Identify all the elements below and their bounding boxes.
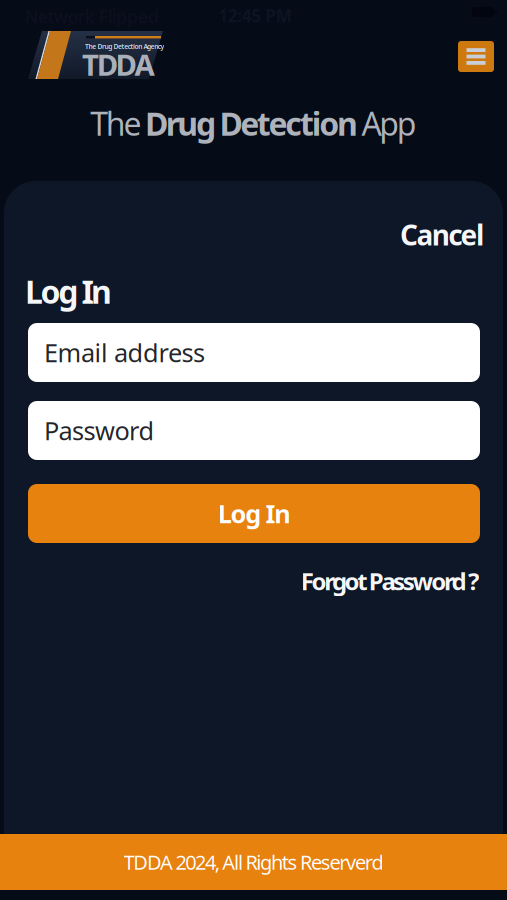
staticText: Cancel [400, 216, 484, 253]
button[interactable]: Cancel [400, 216, 484, 253]
staticText: Log In [25, 270, 112, 312]
staticText: The Drug Detection App [90, 102, 417, 144]
staticText: TDDA 2024, All Rights Reserverd [123, 849, 383, 875]
button[interactable]: Password [28, 401, 480, 460]
staticText: 12:45 PM [218, 4, 292, 27]
staticText: TDDA [82, 45, 154, 84]
staticText: The Drug Detection Agency [85, 42, 164, 51]
staticText: Log In [218, 497, 290, 530]
button[interactable]: Log In [28, 484, 480, 543]
button[interactable]: Forgot Password ? [301, 565, 479, 597]
button[interactable]: Email address [28, 323, 480, 382]
button[interactable]: Menu [458, 41, 494, 72]
staticText: Password [44, 414, 154, 447]
staticText: Email address [44, 336, 205, 369]
staticText: Forgot Password ? [301, 565, 479, 597]
